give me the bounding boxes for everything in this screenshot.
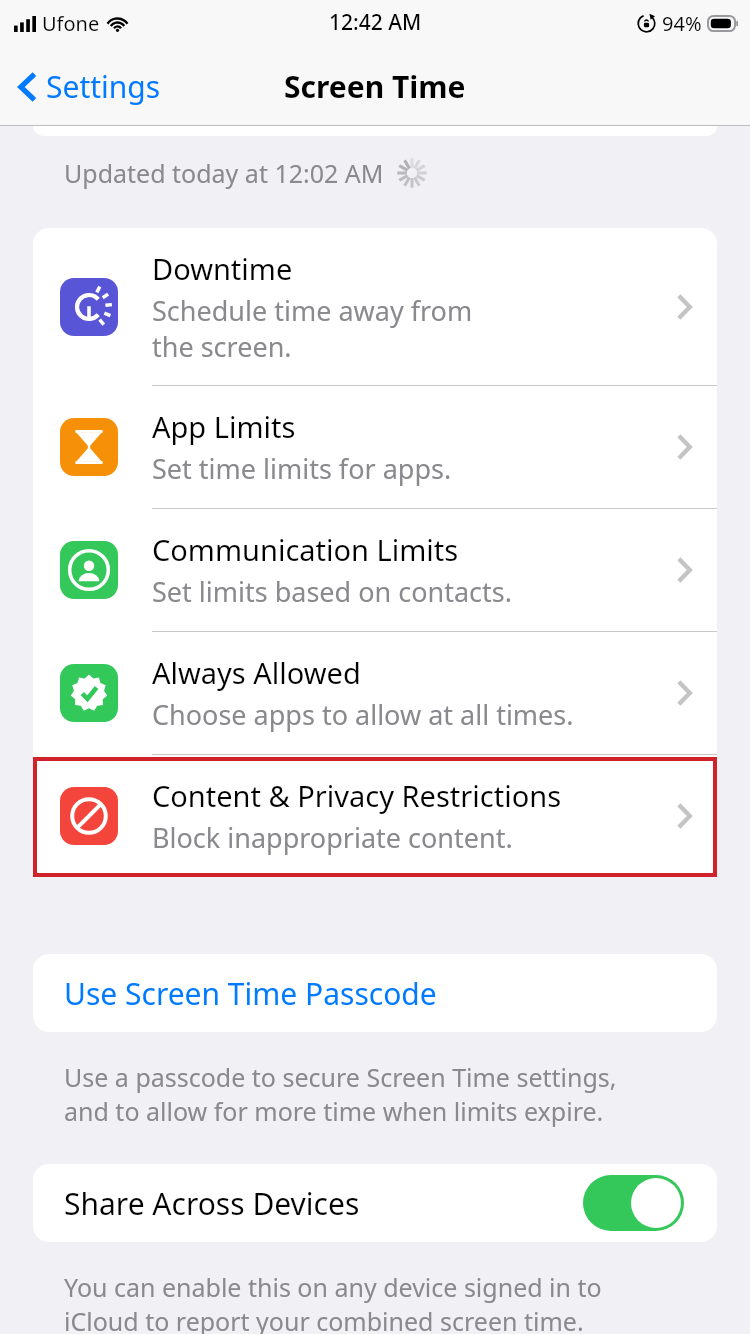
button[interactable]: Downtime — [33, 228, 717, 385]
button[interactable]: Use Screen Time Passcode — [33, 954, 717, 1032]
staticText: Updated today at 12:02 AM — [64, 156, 384, 190]
button[interactable]: Communication Limits — [33, 509, 717, 631]
staticText: App Limits — [152, 407, 296, 446]
staticText: Always Allowed — [152, 653, 361, 692]
staticText: Downtime — [152, 249, 293, 288]
staticText: You can enable this on any device signed… — [64, 1270, 602, 1334]
button[interactable]: Always Allowed — [33, 632, 717, 754]
button[interactable]: Content & Privacy Restrictions — [33, 755, 717, 877]
button[interactable]: App Limits — [33, 386, 717, 508]
staticText: Content & Privacy Restrictions — [152, 776, 562, 815]
staticText: Settings — [46, 66, 161, 107]
staticText: Communication Limits — [152, 530, 459, 569]
staticText: Screen Time — [284, 66, 466, 107]
staticText: Use a passcode to secure Screen Time set… — [64, 1060, 617, 1128]
staticText: Set limits based on contacts. — [152, 573, 512, 610]
staticText: Block inappropriate content. — [152, 819, 513, 856]
button[interactable]: Share Across Devices — [33, 1164, 717, 1242]
staticText: Choose apps to allow at all times. — [152, 696, 574, 733]
staticText: 94% — [662, 10, 702, 37]
staticText: Schedule time away from the screen. — [152, 292, 473, 365]
staticText: 12:42 AM — [329, 8, 422, 37]
staticText: Set time limits for apps. — [152, 450, 452, 487]
staticText: Share Across Devices — [64, 1183, 360, 1224]
staticText: Use Screen Time Passcode — [64, 973, 437, 1014]
button[interactable]: Settings — [14, 60, 165, 113]
staticText: Ufone — [42, 10, 100, 37]
button[interactable]: Share Across Devices toggle, on — [583, 1175, 684, 1231]
